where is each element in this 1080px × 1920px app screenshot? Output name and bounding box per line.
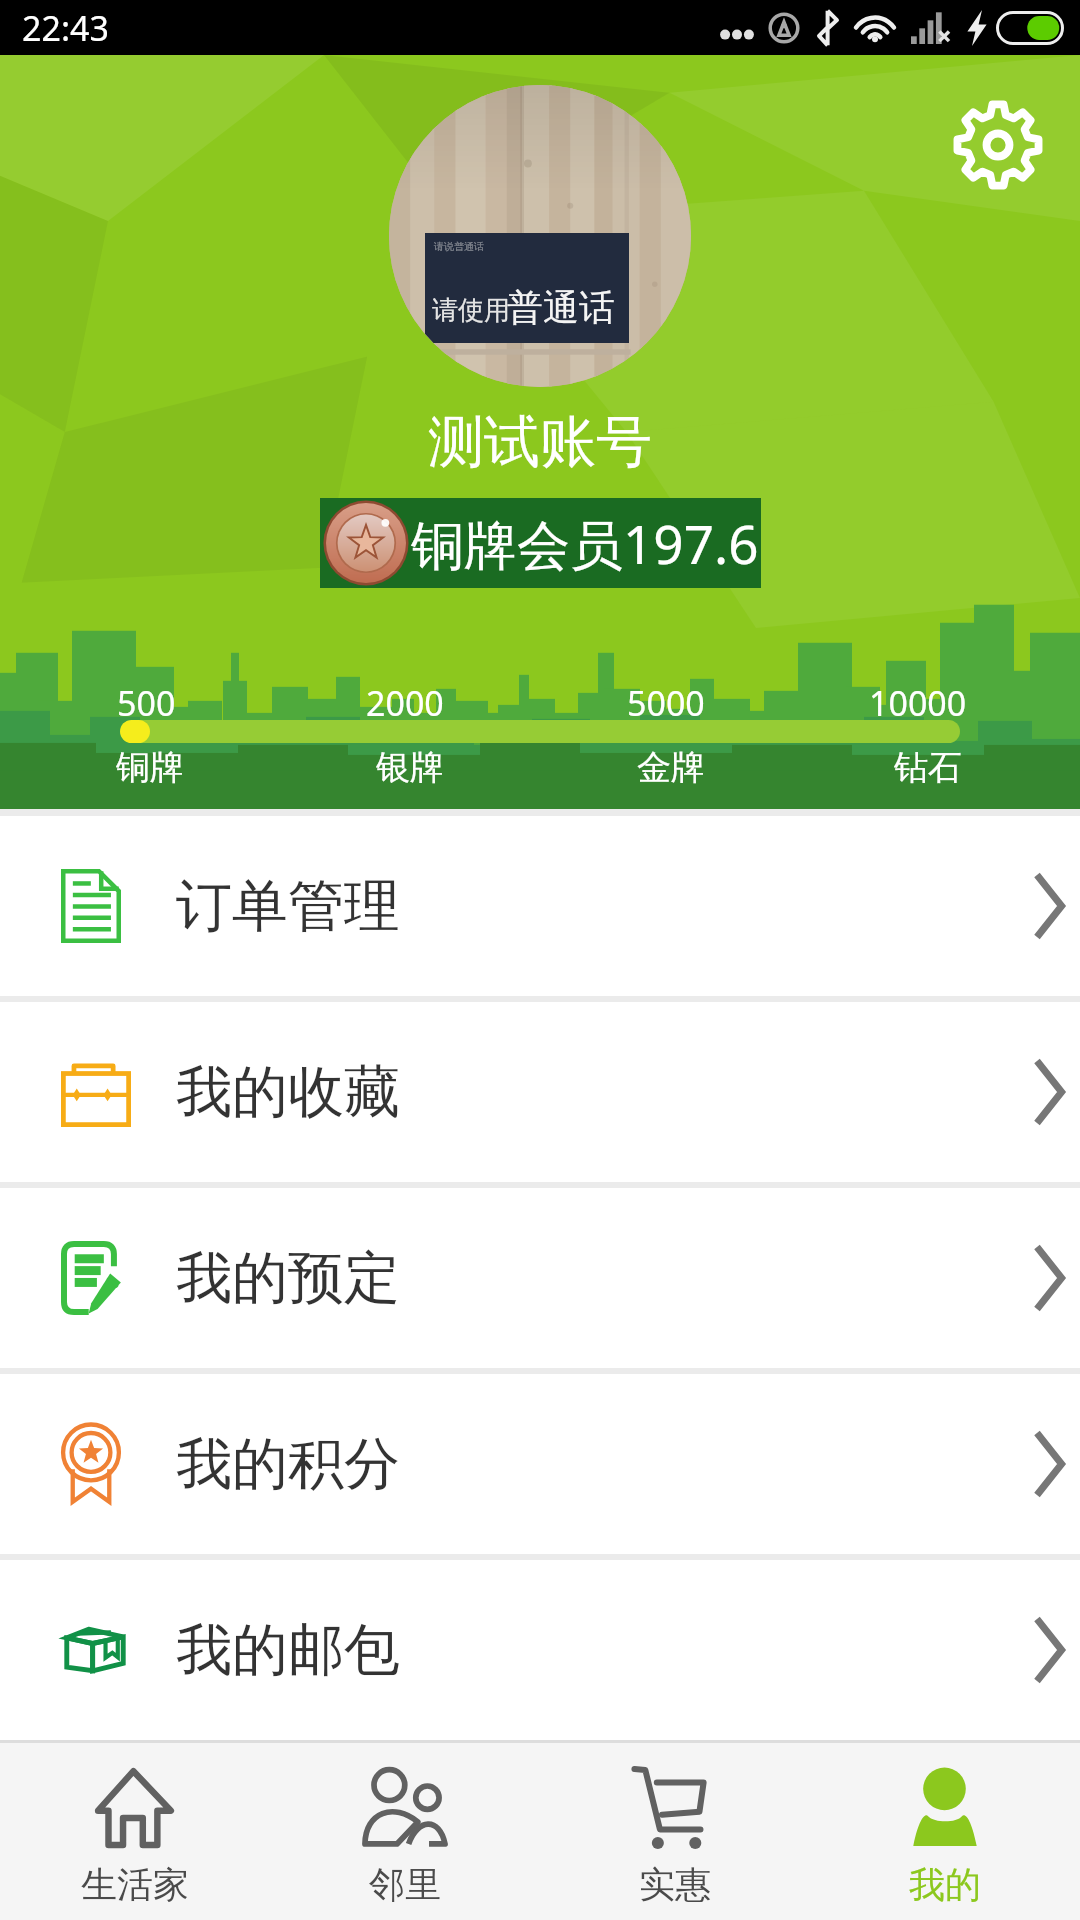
staticText: 我的收藏 [176, 1057, 400, 1128]
staticText: 请说普通话 [434, 240, 484, 253]
staticText: 10000 [869, 680, 967, 716]
button[interactable]: 邻里 [270, 1740, 540, 1920]
button[interactable]: 我的 [810, 1740, 1080, 1920]
button[interactable]: 我的邮包 [0, 1560, 1080, 1740]
staticText: 22:43 [22, 5, 109, 51]
staticText: 500 [117, 680, 176, 716]
staticText: 银牌 [376, 746, 444, 786]
staticText: 普通话 [507, 285, 615, 330]
button[interactable]: Profile photo [389, 85, 691, 387]
staticText: 我的预定 [176, 1243, 400, 1314]
staticText: 金牌 [637, 746, 705, 786]
staticText: 实惠 [639, 1862, 711, 1907]
staticText: 生活家 [81, 1862, 189, 1907]
staticText: 我的邮包 [176, 1615, 400, 1686]
staticText: 请使用 [432, 294, 510, 327]
button[interactable]: Settings [948, 95, 1048, 195]
button[interactable]: 我的积分 [0, 1374, 1080, 1554]
staticText: 2000 [366, 680, 444, 716]
button[interactable]: 我的预定 [0, 1188, 1080, 1368]
staticText: 铜牌 [116, 746, 184, 786]
staticText: 我的 [909, 1862, 981, 1907]
staticText: 我的积分 [176, 1429, 400, 1500]
button[interactable]: 订单管理 [0, 816, 1080, 996]
staticText: 测试账号 [428, 407, 652, 478]
button[interactable]: 实惠 [540, 1740, 810, 1920]
staticText: 邻里 [369, 1862, 441, 1907]
staticText: 钻石 [894, 746, 962, 786]
button[interactable]: 我的收藏 [0, 1002, 1080, 1182]
button[interactable]: 生活家 [0, 1740, 270, 1920]
staticText: 铜牌会员197.6 [411, 507, 759, 579]
staticText: 订单管理 [176, 871, 400, 942]
staticText: 5000 [627, 680, 705, 716]
